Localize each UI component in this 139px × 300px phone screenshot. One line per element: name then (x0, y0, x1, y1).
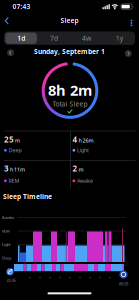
staticText: REM (2, 228, 10, 234)
button[interactable]: 7d (38, 32, 70, 45)
button[interactable]: 1y (103, 32, 135, 45)
staticText: 8h 2m (48, 80, 92, 100)
staticText: 1y (116, 34, 123, 43)
button[interactable] (6, 48, 15, 57)
staticText: 22:35 (6, 278, 15, 283)
staticText: 4 (72, 134, 77, 145)
staticText: Awake (2, 215, 14, 220)
button[interactable] (124, 49, 133, 58)
staticText: Sleep Timeline (3, 192, 52, 201)
staticText: m (15, 137, 20, 144)
staticText: Light (77, 147, 89, 154)
staticText: 2 (72, 163, 77, 174)
staticText: h 11m (10, 166, 25, 173)
staticText: Awake (77, 177, 93, 184)
staticText: Deep (9, 147, 22, 154)
staticText: 25 (4, 134, 14, 145)
staticText: REM (9, 177, 20, 184)
staticText: 4w (82, 34, 91, 43)
staticText: Sunday, September 1 (34, 47, 105, 56)
button[interactable] (0, 14, 14, 28)
staticText: Light (2, 242, 10, 247)
staticText: 07:43 (12, 2, 30, 11)
staticText: Deep (2, 255, 11, 261)
staticText: m (78, 166, 83, 173)
staticText: 3 (4, 163, 9, 174)
staticText: Sleep (60, 16, 78, 25)
staticText: h 26m (78, 137, 93, 144)
button[interactable]: 4w (71, 32, 103, 45)
staticText: Total Sleep (52, 99, 87, 108)
staticText: 06:29 (119, 281, 128, 286)
staticText: 1d (17, 34, 25, 43)
staticText: 7d (50, 34, 58, 43)
button[interactable]: 1d (5, 32, 37, 45)
button[interactable] (125, 19, 137, 27)
